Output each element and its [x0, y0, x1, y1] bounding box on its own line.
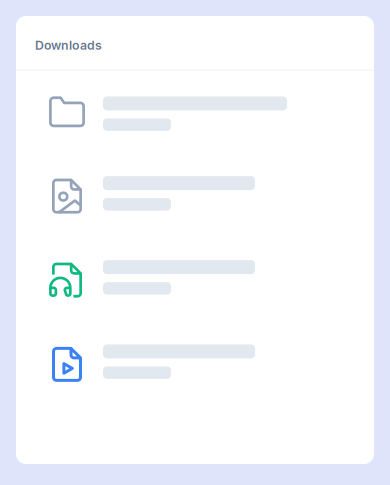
button[interactable]: Downloaded file: [49, 259, 374, 343]
button[interactable]: Downloaded file: [49, 343, 374, 426]
staticText: Downloads: [35, 38, 102, 53]
button[interactable]: Downloaded file: [49, 175, 374, 259]
button[interactable]: Downloaded file: [49, 95, 374, 175]
